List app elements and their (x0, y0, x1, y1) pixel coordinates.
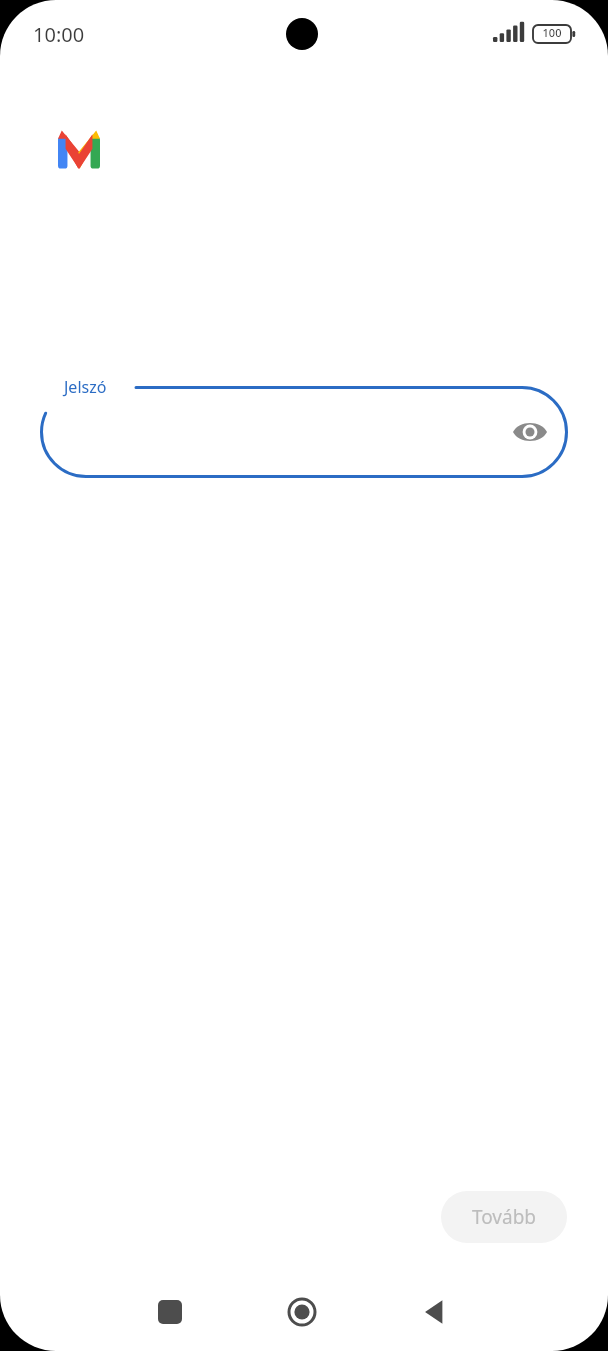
button[interactable]: Recent apps (146, 1288, 194, 1336)
staticText: 10:00 (33, 21, 85, 48)
button[interactable]: Gmail (44, 114, 114, 184)
staticText: Tovább (472, 1204, 537, 1230)
staticText: Jelszó (64, 376, 107, 398)
button[interactable]: Home (278, 1288, 326, 1336)
button[interactable]: Tovább (441, 1191, 567, 1243)
button[interactable]: Jelszó (40, 386, 568, 478)
button[interactable]: Back (410, 1288, 458, 1336)
staticText: 100 (533, 25, 571, 43)
